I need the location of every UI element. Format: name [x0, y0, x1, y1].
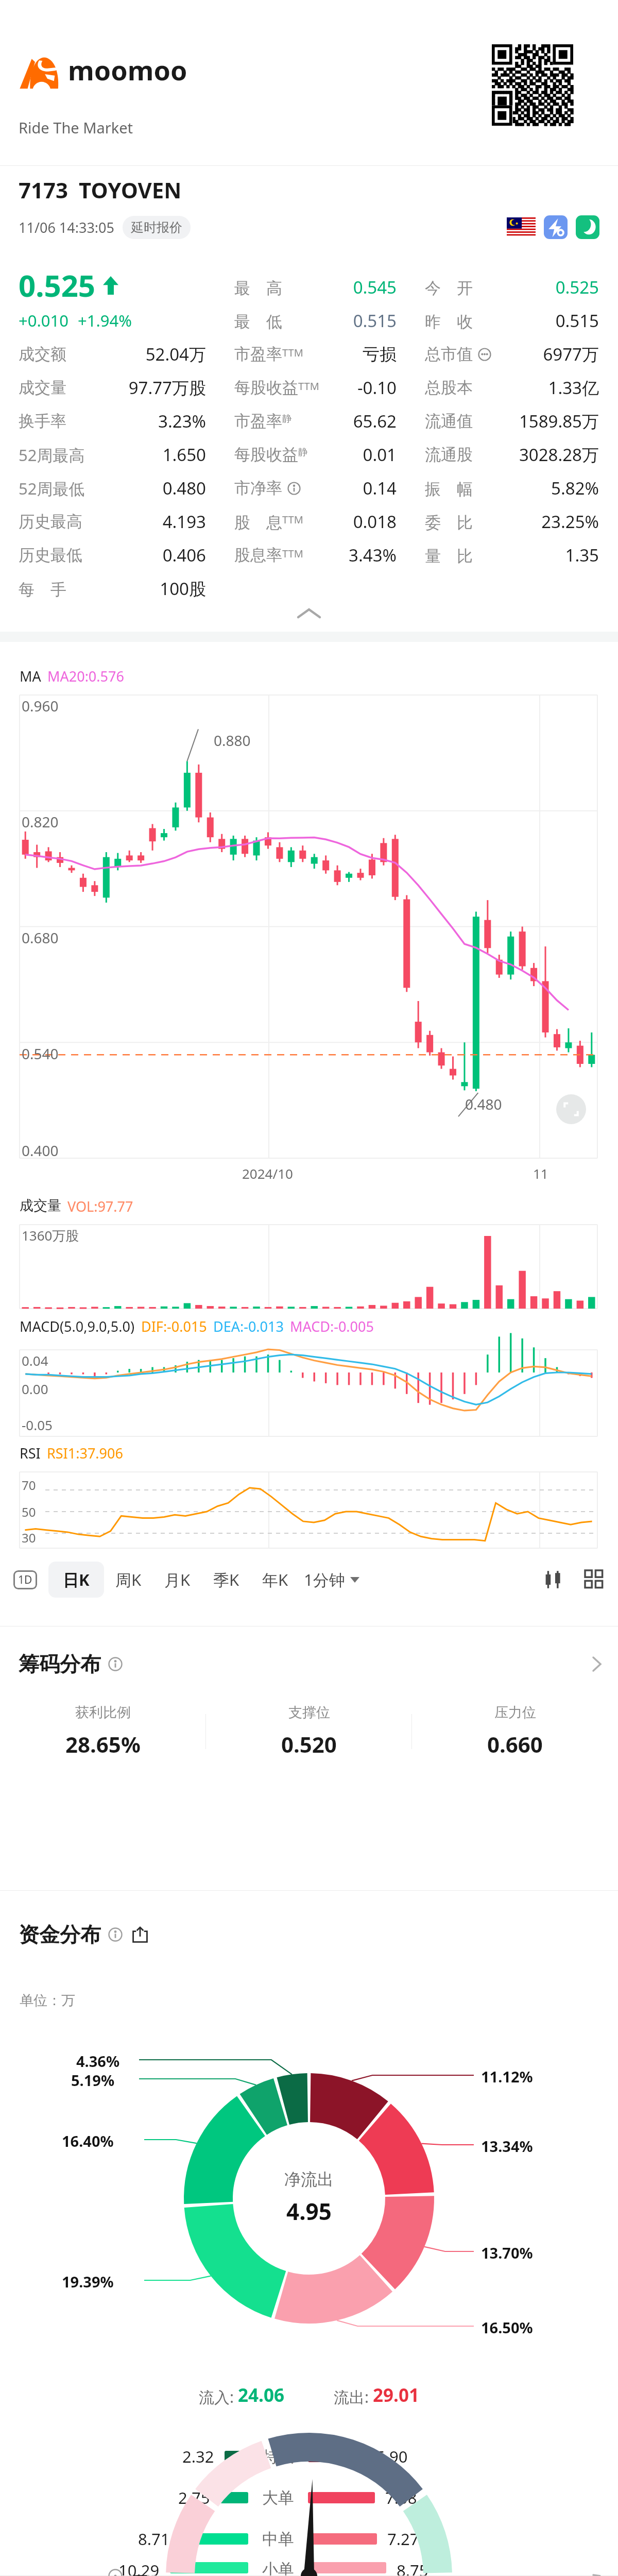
staticText: 3028.28万: [519, 443, 599, 466]
button[interactable]: 延时报价: [131, 219, 182, 235]
staticText: DIF:-0.015: [141, 1317, 207, 1336]
staticText: 换手率: [19, 411, 66, 431]
staticText: 3.43%: [349, 544, 397, 567]
staticText: 16.40%: [62, 2131, 114, 2151]
staticText: 8.71: [138, 2528, 170, 2550]
staticText: 亏损: [363, 344, 397, 365]
staticText: 52.04万: [145, 343, 206, 366]
staticText: 0.820: [22, 812, 59, 832]
staticText: 获利比例: [75, 1704, 131, 1721]
staticText: 52周最低: [19, 478, 85, 499]
staticText: 0.515: [555, 309, 599, 332]
staticText: Ride The Market: [19, 117, 133, 138]
button[interactable]: 年K: [262, 1569, 288, 1590]
staticText: 5.82%: [551, 477, 599, 500]
staticText: 0.540: [22, 1044, 59, 1063]
staticText: 0.018: [353, 510, 397, 533]
staticText: TTM: [282, 346, 303, 360]
button[interactable]: 日K: [63, 1569, 90, 1590]
button[interactable]: 筹码分布: [19, 1636, 602, 1692]
staticText: 1.33亿: [548, 376, 599, 399]
staticText: 0.660: [487, 1730, 543, 1759]
staticText: 7.08: [385, 2487, 417, 2509]
staticText: 4.95: [286, 2196, 332, 2227]
staticText: 2.32: [182, 2446, 214, 2467]
staticText: 10.29: [118, 2560, 160, 2576]
staticText: 13.70%: [481, 2243, 533, 2263]
staticText: 19.39%: [62, 2272, 114, 2292]
staticText: 历史最高: [19, 512, 82, 532]
staticText: 1D: [18, 1572, 32, 1587]
button[interactable]: 支撑位: [206, 1704, 412, 1759]
staticText: 年K: [262, 1569, 288, 1590]
button[interactable]: Level2: [544, 215, 568, 239]
staticText: TTM: [298, 379, 319, 393]
staticText: 0.480: [465, 1094, 502, 1114]
staticText: 16.50%: [481, 2317, 533, 2337]
staticText: 50: [22, 1503, 36, 1520]
button[interactable]: 1D: [18, 1572, 32, 1587]
staticText: 总股本: [425, 378, 473, 398]
staticText: DEA:-0.013: [213, 1317, 284, 1336]
staticText: 1分钟: [304, 1569, 345, 1590]
button[interactable]: 1分钟: [304, 1569, 359, 1590]
staticText: 0.01: [363, 443, 397, 466]
staticText: 97.77万股: [128, 376, 206, 399]
staticText: -0.10: [357, 376, 397, 399]
staticText: 大单: [262, 2488, 294, 2508]
staticText: 市盈率: [234, 411, 282, 431]
staticText: 0.406: [162, 544, 206, 567]
other: Info: [108, 1657, 123, 1671]
staticText: MA: [20, 667, 41, 686]
staticText: 0.04: [22, 1351, 48, 1369]
staticText: 流出:: [334, 2386, 373, 2408]
staticText: 24.06: [238, 2383, 284, 2408]
staticText: moomoo: [68, 52, 187, 88]
staticText: 65.62: [353, 410, 397, 433]
staticText: 0.515: [353, 309, 397, 332]
staticText: 股息率: [234, 545, 282, 565]
button[interactable]: Night mode: [576, 215, 599, 239]
staticText: 0.480: [162, 477, 206, 500]
staticText: +1.94%: [78, 310, 132, 331]
staticText: 特大: [262, 2447, 294, 2467]
staticText: 单位：万: [20, 1992, 75, 2009]
staticText: 5.90: [376, 2446, 408, 2467]
staticText: 每股收益: [234, 378, 298, 398]
staticText: 量 比: [425, 545, 473, 566]
staticText: 静: [282, 413, 292, 425]
staticText: 流入:: [199, 2386, 238, 2408]
button[interactable]: 资金分布: [19, 1906, 602, 1963]
button[interactable]: Fullscreen: [556, 1094, 586, 1124]
button[interactable]: 周K: [115, 1569, 142, 1590]
other: Malaysia: [507, 217, 536, 237]
staticText: 0.520: [281, 1730, 337, 1759]
staticText: 0.400: [22, 1141, 59, 1160]
staticText: 最 低: [234, 310, 282, 332]
staticText: 11: [533, 1164, 548, 1182]
other: More: [592, 1656, 602, 1672]
staticText: 日K: [63, 1569, 90, 1590]
button[interactable]: 压力位: [412, 1704, 618, 1759]
staticText: 0.525: [555, 276, 599, 299]
staticText: 振 幅: [425, 478, 473, 499]
staticText: 3.23%: [158, 410, 206, 433]
staticText: 8.75: [397, 2560, 428, 2576]
staticText: 4.193: [162, 510, 206, 533]
staticText: MA20:0.576: [47, 667, 124, 686]
staticText: 11.12%: [481, 2066, 533, 2087]
other: More indicators: [584, 1569, 605, 1590]
button[interactable]: 季K: [213, 1569, 239, 1590]
staticText: 52周最高: [19, 444, 85, 466]
staticText: 100股: [160, 577, 206, 600]
staticText: 1589.85万: [519, 410, 599, 433]
staticText: MACD:-0.005: [290, 1317, 374, 1336]
button[interactable]: 月K: [164, 1569, 191, 1590]
staticText: 29.01: [373, 2383, 419, 2408]
staticText: 0.00: [22, 1380, 48, 1398]
staticText: 4.36%: [76, 2051, 120, 2071]
staticText: 市净率: [234, 478, 282, 498]
staticText: TTM: [282, 547, 303, 561]
button[interactable]: 获利比例: [0, 1704, 206, 1759]
staticText: RSI: [20, 1444, 41, 1463]
